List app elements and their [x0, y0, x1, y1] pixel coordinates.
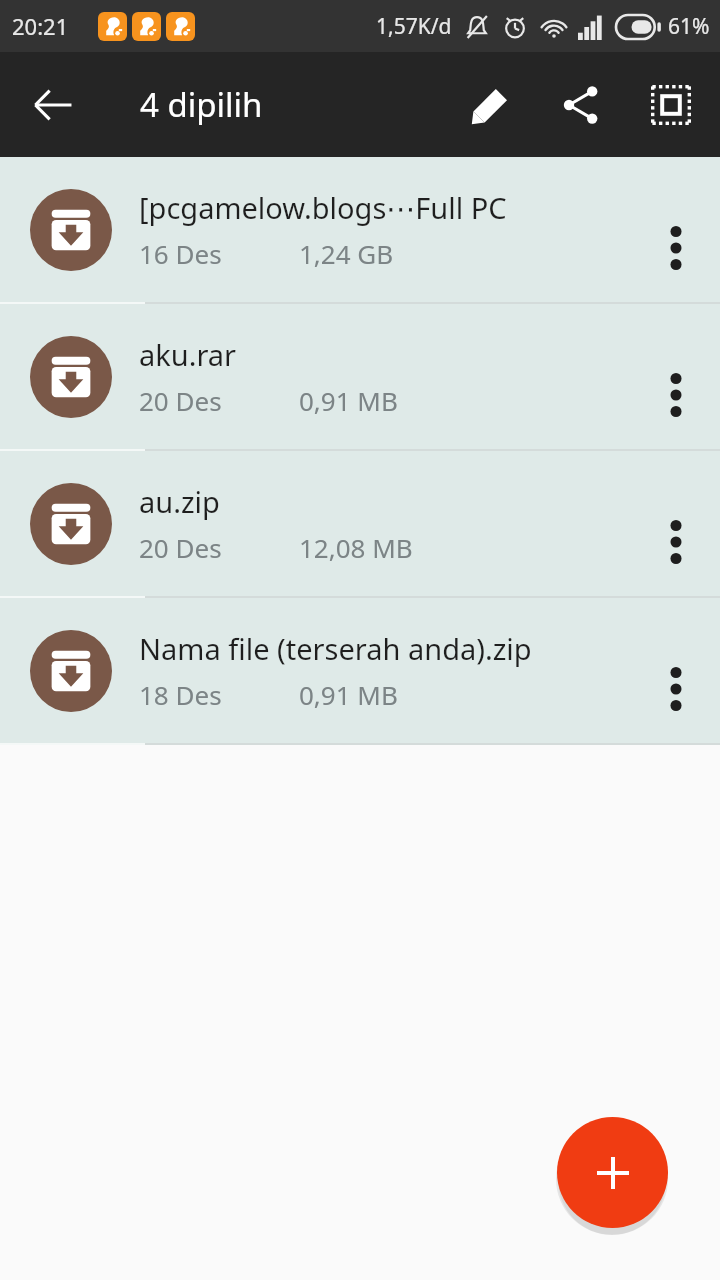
staticText: Nama file (terserah anda).zip	[139, 629, 532, 668]
button[interactable]: More options	[640, 653, 712, 725]
button[interactable]: Add	[557, 1117, 668, 1228]
button[interactable]: [pcgamelow.blogs⋯Full PC Game.rar	[0, 157, 720, 304]
button[interactable]: Select all	[638, 72, 704, 138]
staticText: aku.rar	[139, 335, 237, 374]
staticText: 16 Des	[139, 236, 299, 271]
staticText: 20 Des	[139, 383, 299, 418]
button[interactable]: Edit	[458, 72, 524, 138]
button[interactable]: Share	[548, 72, 614, 138]
staticText: 61%	[668, 12, 710, 41]
staticText: 1,24 GB	[299, 236, 394, 271]
button[interactable]: Nama file (terserah anda).zip	[0, 598, 720, 745]
button[interactable]: au.zip	[0, 451, 720, 598]
button[interactable]: aku.rar	[0, 304, 720, 451]
staticText: 20:21	[12, 11, 69, 41]
staticText: 1,57K/d	[376, 12, 452, 41]
staticText: [pcgamelow.blogs⋯Full PC Game.rar	[139, 188, 640, 227]
staticText: 0,91 MB	[299, 677, 398, 712]
staticText: 4 dipilih	[140, 82, 263, 127]
staticText: 18 Des	[139, 677, 299, 712]
staticText: 12,08 MB	[299, 530, 413, 565]
button[interactable]: More options	[640, 359, 712, 431]
staticText: 0,91 MB	[299, 383, 398, 418]
button[interactable]: More options	[640, 212, 712, 284]
button[interactable]: Back	[18, 70, 88, 140]
staticText: 20 Des	[139, 530, 299, 565]
button[interactable]: More options	[640, 506, 712, 578]
staticText: au.zip	[139, 482, 220, 521]
